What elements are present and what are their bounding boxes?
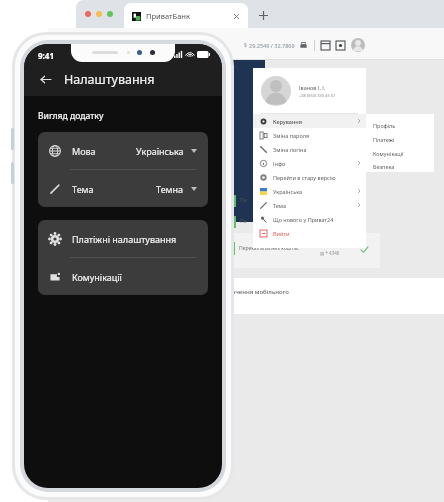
button[interactable]: Безпека	[366, 160, 434, 172]
button[interactable]: Account	[351, 38, 365, 52]
button[interactable]: Зміна пароля	[253, 128, 366, 142]
button[interactable]: Українська	[253, 184, 366, 198]
staticText: Профіль	[373, 122, 396, 129]
staticText: Іванов І. І.	[299, 84, 326, 91]
staticText: Що нового у Приват24	[273, 216, 334, 223]
button[interactable]: New tab	[254, 6, 272, 24]
staticText: Мова	[72, 145, 96, 157]
staticText: Вийти	[273, 230, 290, 237]
button[interactable]: Camera	[336, 41, 345, 50]
button[interactable]: Переказ власних коштів.	[228, 233, 380, 268]
staticText: Зміна пароля	[273, 132, 310, 139]
staticText: Зміна логіна	[273, 146, 307, 153]
staticText: Безпека	[373, 163, 395, 170]
button[interactable]: Перейти в стару версію	[253, 170, 366, 184]
staticText: Інфо	[273, 160, 286, 167]
staticText: Пе	[240, 218, 247, 225]
button[interactable]: Вийти	[253, 226, 366, 240]
button[interactable]: Профіль	[366, 118, 434, 132]
staticText: Платежі	[373, 136, 395, 143]
staticText: Налаштування	[64, 71, 155, 88]
button[interactable]: Тема	[253, 198, 366, 212]
staticText: Комунікації	[72, 271, 122, 283]
staticText: Платіжні налаштування	[72, 233, 177, 245]
button[interactable]: Керування	[253, 114, 366, 128]
button[interactable]: Комунікації	[38, 258, 208, 295]
button[interactable]: Зміна логіна	[253, 142, 366, 156]
staticText: Комунікації	[373, 150, 404, 157]
staticText: Керування	[273, 118, 303, 125]
button[interactable]: Мова	[38, 132, 208, 169]
button[interactable]: Платежі	[366, 132, 434, 146]
button[interactable]: Інфо	[253, 156, 366, 170]
staticText: ПриватБанк	[146, 11, 190, 21]
button[interactable]: Back	[34, 68, 56, 90]
staticText: ▤ * 4346	[320, 250, 340, 256]
button[interactable]: ПриватБанк	[124, 3, 248, 28]
staticText: Пе	[240, 197, 247, 204]
staticText: Тема	[72, 183, 94, 195]
staticText: Українська	[273, 188, 303, 195]
staticText: 9:41	[38, 50, 54, 61]
staticText: 29.2549 / 32.7869	[249, 42, 295, 49]
button[interactable]: Комунікації	[366, 146, 434, 160]
button[interactable]: Print	[299, 41, 308, 50]
staticText: Українська	[136, 145, 184, 157]
staticText: Переказ власних коштів.	[239, 245, 300, 252]
button[interactable]: Платіжні налаштування	[38, 220, 208, 257]
staticText: Тема	[273, 202, 287, 209]
button[interactable]: Тема	[38, 170, 208, 207]
staticText: Темна	[156, 183, 184, 195]
staticText: +38 (063) 333 45 67	[299, 93, 336, 98]
staticText: начення мобільного	[228, 288, 289, 296]
button[interactable]: Close tab	[231, 11, 241, 21]
button[interactable]: Пе	[232, 213, 380, 231]
button[interactable]: Calendar	[321, 41, 330, 50]
button[interactable]: Що нового у Приват24	[253, 212, 366, 226]
staticText: Перейти в стару версію	[273, 174, 336, 181]
staticText: $	[244, 42, 247, 49]
staticText: Вигляд додатку	[38, 110, 104, 122]
button[interactable]: Пе	[232, 192, 380, 210]
